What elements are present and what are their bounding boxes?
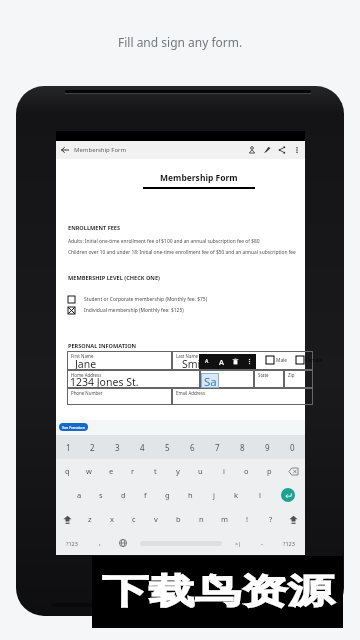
button[interactable]: City — [200, 370, 254, 388]
staticText: Home Address — [71, 372, 102, 378]
button[interactable]: h — [179, 483, 202, 507]
staticText: ! — [246, 514, 249, 524]
staticText: 下载鸟资源 — [102, 569, 334, 612]
button[interactable]: Decrease text size — [199, 354, 214, 369]
staticText: Membership Form — [74, 146, 127, 154]
button[interactable]: Profile — [244, 141, 259, 159]
staticText: b — [176, 514, 181, 524]
button[interactable]: u — [189, 459, 212, 483]
staticText: 0 — [290, 442, 295, 453]
button[interactable]: Shift — [56, 507, 79, 531]
button[interactable]: Email Address — [172, 388, 313, 405]
staticText: z — [88, 514, 92, 524]
button[interactable]: Shift — [282, 507, 305, 531]
button[interactable]: Delete — [228, 354, 242, 369]
button[interactable]: 4 — [130, 435, 155, 459]
button[interactable]: Student or Corporate membership (Monthly… — [68, 296, 208, 303]
staticText: 5 — [165, 442, 170, 453]
button[interactable]: k — [225, 483, 248, 507]
button[interactable]: 2 — [80, 435, 105, 459]
button[interactable]: ? — [259, 507, 282, 531]
button[interactable]: ?123 — [273, 531, 305, 555]
button[interactable]: y — [166, 459, 189, 483]
button[interactable]: r — [122, 459, 144, 483]
button[interactable]: ?123 — [56, 531, 88, 555]
button[interactable]: d — [112, 483, 134, 507]
staticText: m — [221, 514, 229, 524]
button[interactable]: n — [190, 507, 213, 531]
staticText: State — [258, 372, 269, 378]
button[interactable]: t — [144, 459, 166, 483]
button[interactable]: More — [242, 354, 256, 369]
button[interactable]: ! — [236, 507, 259, 531]
button[interactable]: l — [248, 483, 271, 507]
button[interactable]: San Francisco — [59, 423, 88, 431]
staticText: 1234 Jones St. — [70, 375, 139, 389]
button[interactable]: a — [68, 483, 90, 507]
button[interactable]: Phone Number — [67, 388, 172, 405]
staticText: 2 — [90, 442, 95, 453]
button[interactable]: Last Name — [172, 351, 313, 370]
button[interactable]: Change language — [111, 531, 134, 555]
staticText: Female — [306, 357, 323, 364]
button[interactable]: Back — [56, 141, 74, 159]
button[interactable]: Space — [134, 531, 227, 555]
button[interactable]: More options — [289, 141, 304, 159]
staticText: PERSONAL INFOMATION — [68, 342, 137, 350]
button[interactable]: j — [202, 483, 225, 507]
button[interactable]: p — [258, 459, 281, 483]
button[interactable]: Sa — [201, 373, 219, 388]
button[interactable]: Enter — [271, 483, 305, 507]
button[interactable]: 6 — [180, 435, 205, 459]
button[interactable]: s — [90, 483, 112, 507]
staticText: 7 — [215, 442, 220, 453]
button[interactable]: x — [101, 507, 123, 531]
button[interactable]: Backspace — [281, 459, 305, 483]
staticText: r — [131, 466, 135, 476]
staticText: f — [144, 490, 147, 500]
button[interactable]: Male — [266, 356, 288, 364]
button[interactable]: e — [100, 459, 122, 483]
button[interactable]: z — [79, 507, 101, 531]
staticText: First Name — [71, 353, 94, 359]
staticText: , — [99, 538, 101, 548]
button[interactable]: Female — [296, 356, 323, 364]
button[interactable]: f — [134, 483, 156, 507]
button[interactable]: 5 — [155, 435, 180, 459]
staticText: Last Name — [176, 353, 198, 359]
button[interactable]: g — [156, 483, 179, 507]
staticText: Zip — [288, 372, 295, 378]
button[interactable]: 9 — [255, 435, 280, 459]
staticText: San Francisco — [62, 425, 85, 430]
button[interactable]: 3 — [105, 435, 130, 459]
button[interactable]: m — [213, 507, 236, 531]
button[interactable]: q — [56, 459, 78, 483]
button[interactable]: State — [254, 370, 284, 388]
staticText: City — [204, 372, 212, 378]
button[interactable]: o — [235, 459, 258, 483]
button[interactable]: 1 — [56, 435, 80, 459]
button[interactable]: >| — [227, 531, 250, 555]
staticText: 8 — [240, 442, 245, 453]
staticText: Membership Form — [160, 172, 238, 184]
button[interactable]: Increase text size — [214, 354, 228, 369]
button[interactable]: v — [145, 507, 167, 531]
button[interactable]: i — [212, 459, 235, 483]
button[interactable]: 8 — [230, 435, 255, 459]
staticText: h — [188, 490, 193, 500]
button[interactable]: Home Address — [67, 370, 200, 388]
button[interactable]: b — [167, 507, 190, 531]
button[interactable]: c — [123, 507, 145, 531]
staticText: Male — [276, 357, 288, 364]
button[interactable]: Individual membership (Monthly fee: $125… — [68, 307, 184, 314]
button[interactable]: 0 — [280, 435, 305, 459]
button[interactable]: Sign — [259, 141, 274, 159]
button[interactable]: , — [88, 531, 111, 555]
button[interactable]: Share — [274, 141, 289, 159]
button[interactable]: 7 — [205, 435, 230, 459]
button[interactable]: Zip — [284, 370, 313, 388]
staticText: o — [244, 466, 249, 476]
button[interactable]: First Name — [67, 351, 172, 370]
button[interactable]: w — [78, 459, 100, 483]
